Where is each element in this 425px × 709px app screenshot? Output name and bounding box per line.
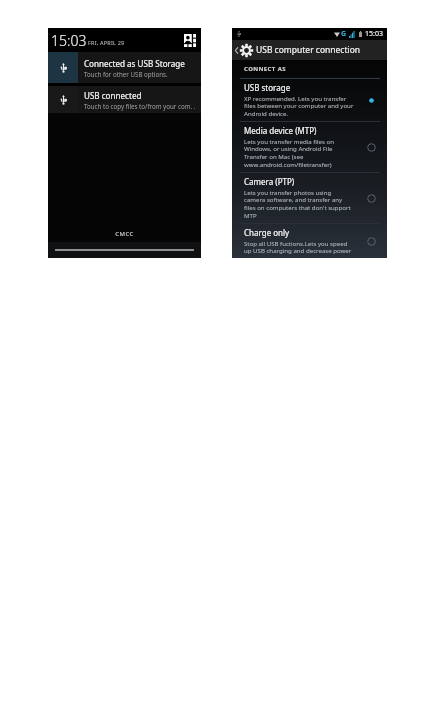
staticText: USB connected: [84, 90, 142, 101]
button[interactable]: USB storage: [240, 79, 380, 121]
staticText: CMCC: [48, 230, 201, 238]
staticText: Charge only: [244, 227, 290, 238]
staticText: Connected as USB Storage: [84, 58, 185, 69]
staticText: Camera (PTP): [244, 176, 295, 187]
button[interactable]: Quick settings: [184, 34, 196, 47]
button[interactable]: Camera (PTP): [240, 173, 380, 223]
button[interactable]: USB computer connection: [232, 40, 387, 60]
staticText: FRI, APRIL 29: [88, 39, 125, 46]
button[interactable]: Connected as USB Storage: [48, 52, 201, 83]
staticText: Touch for other USB options.: [84, 70, 168, 78]
staticText: G: [341, 29, 347, 39]
button[interactable]: Charge only: [240, 224, 380, 258]
staticText: CONNECT AS: [244, 65, 286, 73]
staticText: XP recommended. Lets you transfer files …: [244, 94, 354, 118]
staticText: USB storage: [244, 82, 291, 93]
staticText: 15:03: [365, 29, 383, 39]
button[interactable]: USB connected: [48, 86, 201, 113]
staticText: USB computer connection: [256, 44, 361, 56]
staticText: Lets you transfer media files on Windows…: [244, 137, 334, 169]
staticText: Media device (MTP): [244, 125, 317, 136]
staticText: 15:03: [51, 31, 87, 50]
button[interactable]: Media device (MTP): [240, 122, 380, 172]
staticText: Stop all USB fuctions.Lets you speed up …: [244, 239, 352, 255]
staticText: Touch to copy files to/from your com. .: [84, 102, 196, 110]
staticText: Lets you transfer photos using camera so…: [244, 188, 351, 220]
